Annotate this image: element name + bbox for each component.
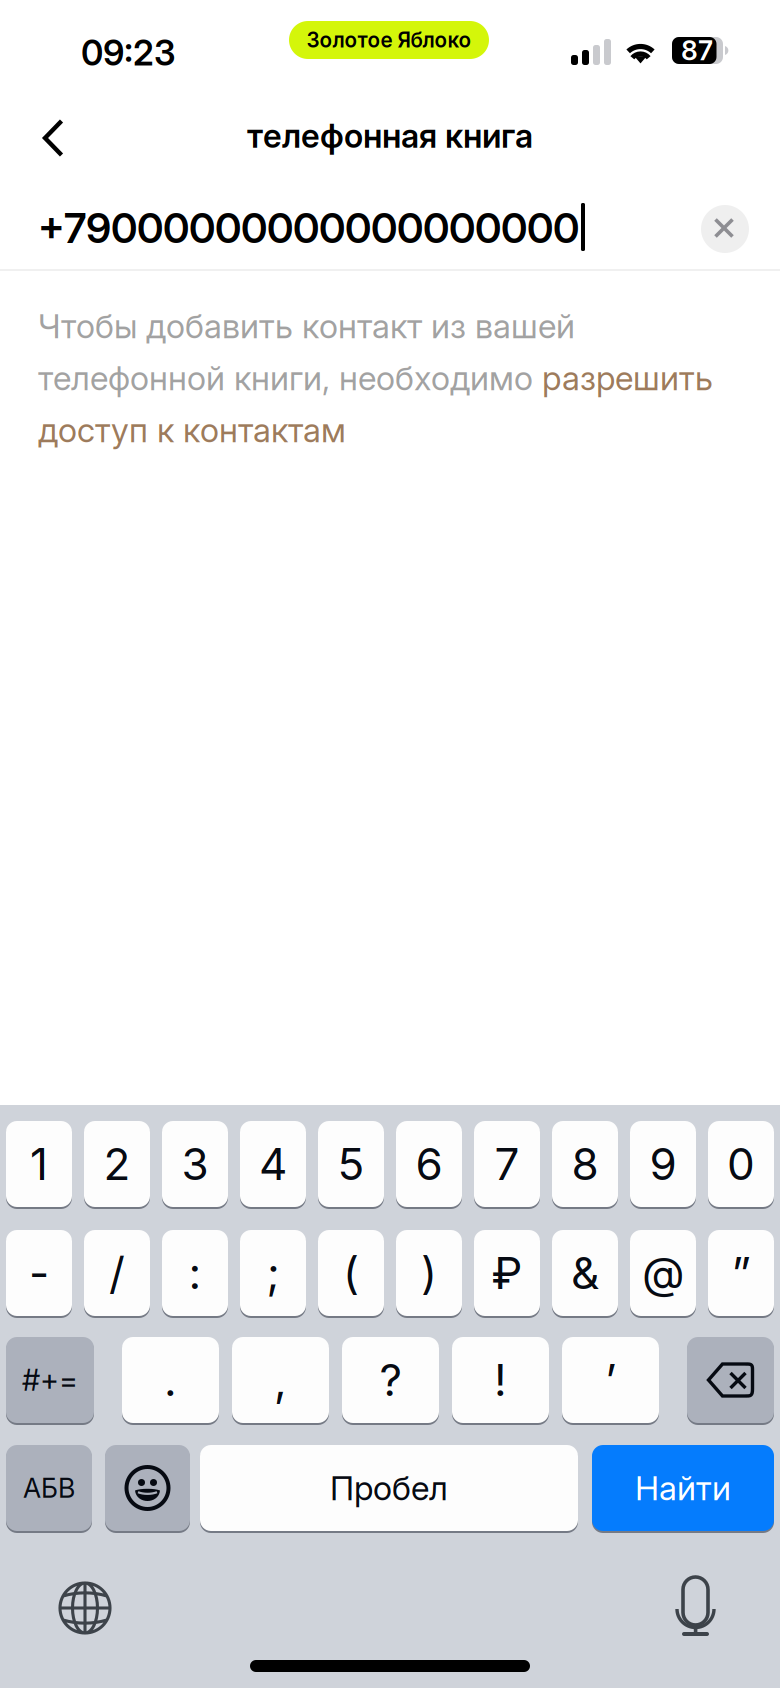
staticText: ; [266,1246,279,1300]
button[interactable]: 3 [162,1121,228,1207]
button[interactable]: 7 [474,1121,540,1207]
button[interactable]: Пробел [200,1445,578,1531]
staticText: : [188,1246,201,1300]
staticText: 6 [415,1137,442,1191]
staticText: ₽ [491,1246,522,1300]
staticText: Пробел [330,1468,448,1508]
staticText: 7 [494,1137,519,1191]
staticText: . [164,1353,177,1407]
staticText: ( [343,1246,359,1300]
button[interactable]: , [232,1337,329,1423]
button[interactable]: ’ [562,1337,659,1423]
button[interactable]: ” [708,1230,774,1316]
staticText: 87 [681,34,713,67]
button[interactable]: / [84,1230,150,1316]
button[interactable]: 6 [396,1121,462,1207]
button[interactable]: : [162,1230,228,1316]
button[interactable]: & [552,1230,618,1316]
staticText: ’ [605,1353,616,1407]
button[interactable]: ? [342,1337,439,1423]
staticText: #+= [22,1362,78,1398]
button[interactable]: ₽ [474,1230,540,1316]
button[interactable]: . [122,1337,219,1423]
staticText: АБВ [23,1472,75,1504]
button[interactable]: Delete [687,1337,774,1423]
button[interactable]: @ [630,1230,696,1316]
button[interactable]: 8 [552,1121,618,1207]
staticText: & [571,1246,599,1300]
staticText: 8 [571,1137,598,1191]
button[interactable]: Найти [592,1445,774,1531]
staticText: доступ к контактам [38,410,346,450]
button[interactable]: 5 [318,1121,384,1207]
button[interactable]: 0 [708,1121,774,1207]
staticText: , [274,1353,287,1407]
button[interactable]: Clear text [701,205,749,253]
staticText: Золотое Яблоко [306,27,471,52]
staticText: ! [494,1353,507,1407]
staticText: +79000000000000000000 [38,203,579,253]
staticText: Найти [635,1468,731,1508]
staticText: 3 [181,1137,208,1191]
staticText: 4 [259,1137,287,1191]
staticText: разрешить [542,358,713,398]
button[interactable]: ! [452,1337,549,1423]
button[interactable]: 4 [240,1121,306,1207]
button[interactable]: #+= [6,1337,94,1423]
button[interactable]: 1 [6,1121,72,1207]
staticText: ? [379,1353,401,1407]
button[interactable]: АБВ [6,1445,92,1531]
staticText: 9 [649,1137,676,1191]
button[interactable]: Emoji [105,1445,190,1531]
button[interactable]: 9 [630,1121,696,1207]
button[interactable]: Switch keyboard [58,1581,112,1635]
staticText: 2 [103,1137,130,1191]
staticText: ) [421,1246,437,1300]
button[interactable]: ; [240,1230,306,1316]
staticText: @ [642,1246,684,1300]
staticText: - [29,1246,49,1300]
staticText: телефонной книги, необходимо [38,358,542,398]
button[interactable]: Back [22,100,84,176]
button[interactable]: ( [318,1230,384,1316]
staticText: 0 [727,1137,755,1191]
staticText: ” [731,1246,750,1300]
button[interactable]: ) [396,1230,462,1316]
staticText: Чтобы добавить контакт из вашей [38,306,575,346]
staticText: 1 [30,1137,48,1191]
staticText: 5 [337,1137,364,1191]
button[interactable]: Dictation [671,1577,720,1637]
button[interactable]: - [6,1230,72,1316]
staticText: / [109,1246,125,1300]
staticText: 09:23 [81,32,176,74]
staticText: телефонная книга [247,116,533,155]
button[interactable]: 2 [84,1121,150,1207]
